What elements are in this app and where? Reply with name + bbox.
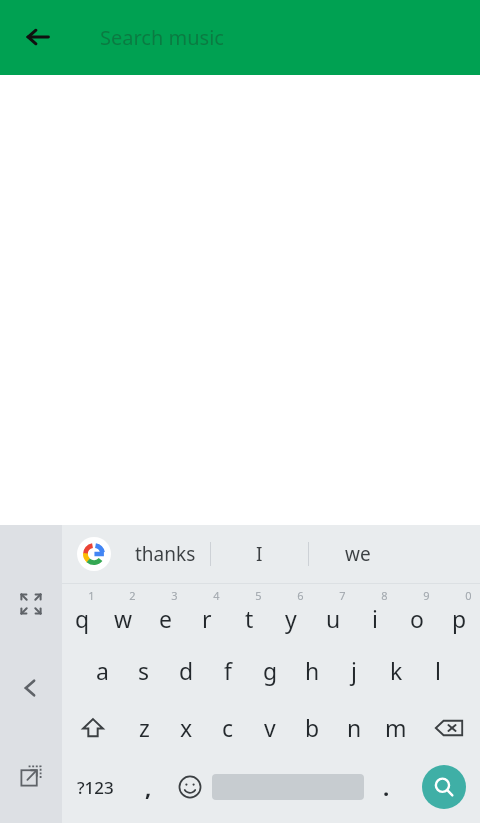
button[interactable]: Backspace bbox=[417, 699, 480, 756]
button[interactable]: , bbox=[129, 756, 168, 818]
button[interactable]: 3 bbox=[144, 584, 186, 642]
staticText: 2 bbox=[129, 588, 136, 603]
button[interactable]: b bbox=[291, 699, 333, 756]
staticText: j bbox=[351, 655, 357, 686]
button[interactable]: v bbox=[249, 699, 291, 756]
staticText: b bbox=[305, 712, 320, 743]
staticText: r bbox=[202, 603, 212, 634]
staticText: i bbox=[372, 603, 378, 634]
button[interactable]: Back bbox=[14, 13, 62, 61]
staticText: h bbox=[305, 655, 320, 686]
staticText: I bbox=[256, 541, 263, 567]
button[interactable]: 5 bbox=[228, 584, 270, 642]
staticText: m bbox=[385, 712, 407, 743]
staticText: ?123 bbox=[77, 776, 114, 799]
button[interactable]: z bbox=[124, 699, 165, 756]
staticText: u bbox=[326, 603, 341, 634]
staticText: s bbox=[138, 655, 150, 686]
staticText: 6 bbox=[297, 588, 304, 603]
staticText: q bbox=[75, 603, 90, 634]
staticText: x bbox=[180, 712, 193, 743]
staticText: 0 bbox=[465, 588, 472, 603]
button[interactable]: j bbox=[333, 642, 375, 699]
staticText: a bbox=[96, 655, 109, 686]
staticText: 9 bbox=[423, 588, 430, 603]
button[interactable]: Expand keyboard bbox=[7, 580, 55, 628]
button[interactable]: 7 bbox=[312, 584, 354, 642]
button[interactable]: s bbox=[123, 642, 165, 699]
button[interactable]: g bbox=[249, 642, 291, 699]
button[interactable]: . bbox=[364, 756, 408, 818]
button[interactable]: we bbox=[309, 525, 406, 583]
button[interactable]: 2 bbox=[103, 584, 144, 642]
staticText: 1 bbox=[88, 588, 95, 603]
button[interactable]: thanks bbox=[120, 525, 210, 583]
button[interactable]: Search music bbox=[100, 0, 464, 75]
button[interactable]: 6 bbox=[270, 584, 312, 642]
button[interactable]: 0 bbox=[438, 584, 480, 642]
staticText: t bbox=[245, 603, 254, 634]
button[interactable]: Space bbox=[212, 756, 364, 818]
button[interactable]: 4 bbox=[186, 584, 228, 642]
staticText: p bbox=[452, 603, 467, 634]
staticText: thanks bbox=[135, 541, 196, 567]
button[interactable]: Google bbox=[74, 534, 114, 574]
button[interactable]: 9 bbox=[396, 584, 438, 642]
staticText: g bbox=[263, 655, 278, 686]
button[interactable]: Shift bbox=[62, 699, 124, 756]
staticText: 3 bbox=[171, 588, 178, 603]
staticText: f bbox=[224, 655, 232, 686]
button[interactable]: f bbox=[207, 642, 249, 699]
button[interactable]: h bbox=[291, 642, 333, 699]
staticText: z bbox=[139, 712, 150, 743]
staticText: 5 bbox=[255, 588, 262, 603]
staticText: k bbox=[390, 655, 403, 686]
staticText: c bbox=[222, 712, 234, 743]
button[interactable]: m bbox=[375, 699, 417, 756]
staticText: l bbox=[435, 655, 441, 686]
staticText: d bbox=[179, 655, 194, 686]
button[interactable]: a bbox=[82, 642, 123, 699]
staticText: Search music bbox=[100, 24, 224, 51]
button[interactable]: Search bbox=[408, 756, 480, 818]
button[interactable]: l bbox=[417, 642, 459, 699]
button[interactable]: k bbox=[375, 642, 417, 699]
button[interactable]: n bbox=[333, 699, 375, 756]
button[interactable]: x bbox=[165, 699, 207, 756]
button[interactable]: Floating keyboard bbox=[7, 752, 55, 800]
button[interactable]: c bbox=[207, 699, 249, 756]
staticText: 8 bbox=[381, 588, 388, 603]
button[interactable]: 8 bbox=[354, 584, 396, 642]
button[interactable]: I bbox=[211, 525, 308, 583]
button[interactable]: Previous bbox=[7, 664, 55, 712]
staticText: 4 bbox=[213, 588, 220, 603]
button[interactable]: d bbox=[165, 642, 207, 699]
button[interactable]: Emoji bbox=[168, 756, 212, 818]
staticText: y bbox=[285, 603, 297, 634]
button[interactable]: 1 bbox=[62, 584, 103, 642]
button[interactable]: ?123 bbox=[62, 756, 129, 818]
staticText: n bbox=[347, 712, 362, 743]
staticText: v bbox=[264, 712, 276, 743]
staticText: we bbox=[345, 541, 371, 567]
staticText: , bbox=[145, 772, 152, 802]
staticText: e bbox=[159, 603, 172, 634]
staticText: . bbox=[383, 772, 390, 802]
staticText: w bbox=[114, 603, 133, 634]
staticText: 7 bbox=[339, 588, 346, 603]
staticText: o bbox=[410, 603, 424, 634]
